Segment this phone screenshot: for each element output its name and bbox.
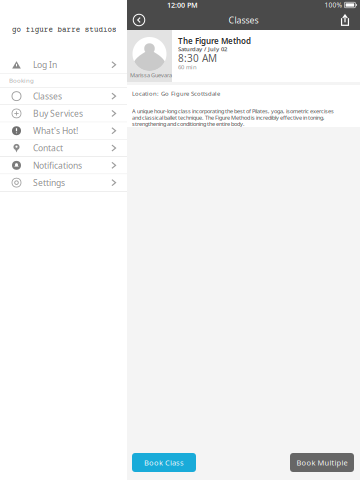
staticText: A unique hour-long class incorporating t… <box>132 107 334 128</box>
button[interactable]: Contact <box>0 140 127 156</box>
button[interactable]: What's Hot! <box>0 122 127 139</box>
staticText: Book Class <box>144 457 184 468</box>
button[interactable]: Notifications <box>0 157 127 174</box>
staticText: Classes <box>33 90 62 102</box>
staticText: Buy Services <box>33 108 83 119</box>
staticText: Settings <box>33 177 65 188</box>
staticText: 60 min <box>178 63 197 71</box>
staticText: Saturday / July 02 <box>178 45 227 53</box>
staticText: Notifications <box>33 159 82 171</box>
staticText: Classes <box>228 14 258 26</box>
staticText: Booking <box>9 76 34 85</box>
staticText: go figure barre studios <box>12 26 116 34</box>
button[interactable]: Buy Services <box>0 105 127 122</box>
button[interactable]: Book Class <box>132 453 196 472</box>
staticText: Log In <box>33 59 57 70</box>
staticText: Book Multiple <box>296 457 347 468</box>
staticText: 12:00 PM <box>167 0 198 10</box>
button[interactable]: Classes <box>0 88 127 104</box>
staticText: Location: Go Figure Scottsdale <box>132 89 220 97</box>
button[interactable]: Log In <box>0 56 127 73</box>
staticText: What's Hot! <box>33 125 78 136</box>
button[interactable]: Book Multiple <box>290 453 354 472</box>
staticText: The Figure Method <box>178 35 251 46</box>
staticText: Contact <box>33 142 63 154</box>
button[interactable]: Share <box>330 10 359 30</box>
staticText: Marissa Guevara <box>130 71 172 79</box>
staticText: 8:30 AM <box>178 51 217 65</box>
button[interactable]: Back <box>127 10 150 30</box>
button[interactable]: Settings <box>0 174 127 191</box>
staticText: 100% <box>324 0 342 10</box>
